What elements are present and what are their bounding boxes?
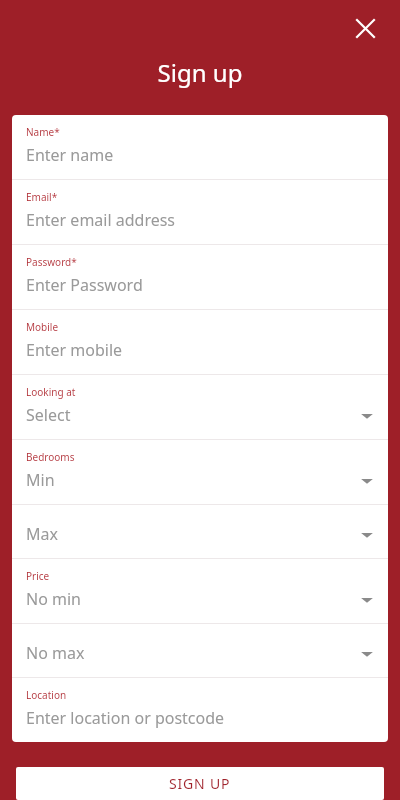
staticText: Enter email address [26, 209, 176, 231]
staticText: Price [26, 569, 50, 583]
staticText: Max [26, 523, 58, 545]
button[interactable]: Max [12, 505, 388, 558]
staticText: SIGN UP [169, 774, 231, 793]
staticText: Location [26, 688, 67, 702]
staticText: No max [26, 642, 85, 664]
staticText: Enter mobile [26, 339, 123, 361]
staticText: Looking at [26, 385, 76, 399]
staticText: Enter name [26, 144, 114, 166]
button[interactable]: No max [12, 624, 388, 677]
staticText: No min [26, 588, 81, 610]
button[interactable]: Looking at [12, 375, 388, 439]
staticText: Password* [26, 255, 77, 269]
button[interactable]: Bedrooms [12, 440, 388, 504]
button[interactable]: Close [348, 11, 382, 45]
button[interactable]: Location [12, 678, 388, 742]
button[interactable]: Email* [12, 180, 388, 244]
staticText: Select [26, 404, 71, 426]
staticText: Enter Password [26, 274, 143, 296]
staticText: Mobile [26, 320, 59, 334]
staticText: Email* [26, 190, 58, 204]
staticText: Sign up [0, 56, 400, 89]
button[interactable]: Name* [12, 115, 388, 179]
staticText: Enter location or postcode [26, 707, 225, 729]
button[interactable]: Password* [12, 245, 388, 309]
button[interactable]: Mobile [12, 310, 388, 374]
staticText: Min [26, 469, 55, 491]
staticText: Name* [26, 125, 60, 139]
button[interactable]: SIGN UP [16, 767, 384, 800]
button[interactable]: Price [12, 559, 388, 623]
staticText: Bedrooms [26, 450, 75, 464]
